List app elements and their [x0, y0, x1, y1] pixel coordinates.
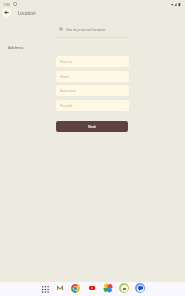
staticText: Pin code — [60, 104, 73, 108]
staticText: Address — [8, 45, 24, 51]
button[interactable]: Photos — [103, 283, 113, 293]
staticText: Use my current location — [66, 27, 106, 32]
button[interactable]: Gmail — [55, 283, 65, 293]
staticText: 1:05 — [3, 2, 11, 7]
button[interactable]: Street — [56, 71, 129, 82]
staticText: Street — [60, 75, 69, 79]
button[interactable]: Messages — [135, 283, 145, 293]
staticText: Location — [18, 10, 36, 16]
button[interactable]: YouTube — [87, 283, 97, 293]
button[interactable]: Door no — [56, 56, 129, 67]
button[interactable]: Use my current location — [59, 25, 129, 33]
button[interactable]: Pin code — [56, 100, 129, 111]
staticText: Area name — [60, 89, 76, 93]
staticText: Door no — [60, 60, 72, 64]
button[interactable]: Next — [56, 121, 128, 132]
button[interactable]: App — [119, 283, 129, 293]
staticText: Next — [88, 124, 96, 129]
button[interactable]: Chrome — [70, 283, 80, 293]
button[interactable]: Area name — [56, 85, 129, 96]
button[interactable]: All apps — [42, 286, 49, 293]
button[interactable]: Back — [2, 8, 11, 17]
